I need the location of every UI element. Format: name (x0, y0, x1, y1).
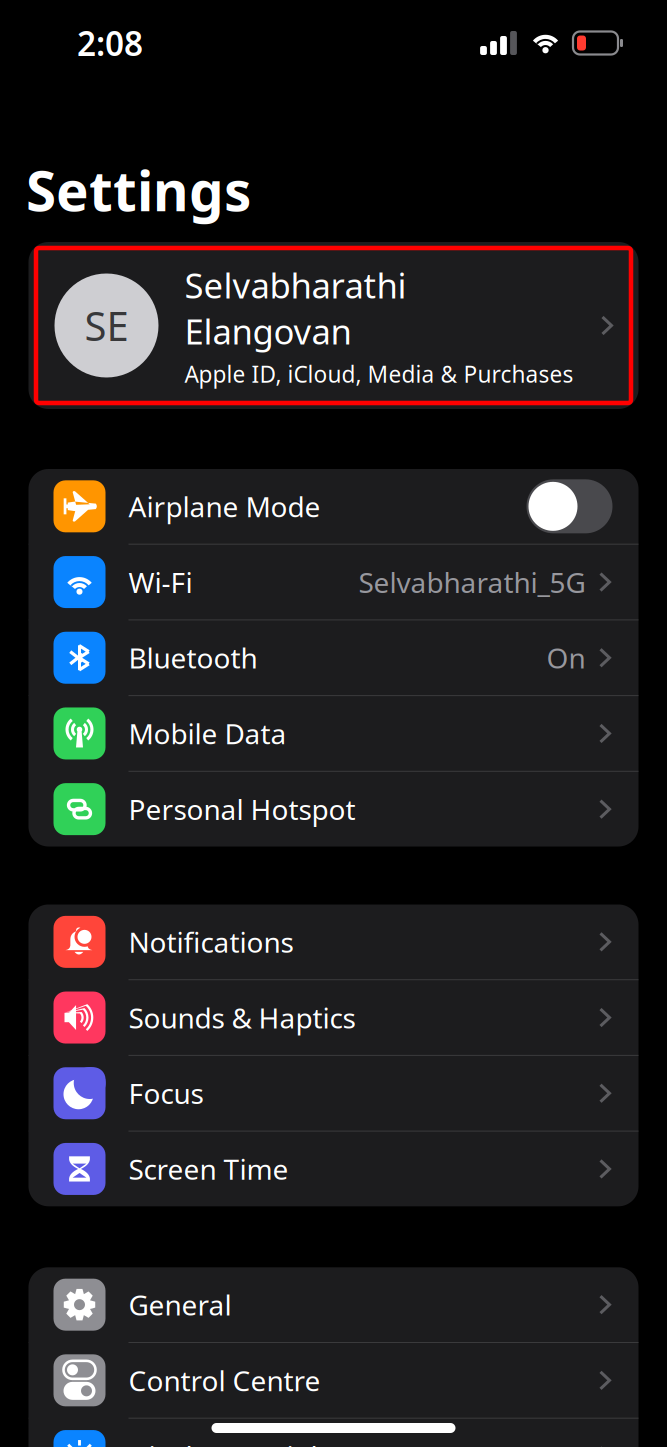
staticText: Notifications (128, 923, 293, 960)
button[interactable]: Display & Brightness (28, 1419, 638, 1447)
staticText: Mobile Data (128, 715, 286, 752)
staticText: Selvabharathi (184, 262, 406, 308)
staticText: Focus (128, 1075, 203, 1112)
button[interactable]: Personal Hotspot (28, 772, 638, 846)
staticText: Personal Hotspot (128, 791, 355, 828)
button[interactable]: Focus (28, 1056, 638, 1131)
button[interactable]: Sounds & Haptics (28, 980, 638, 1055)
staticText: SE (84, 299, 128, 352)
staticText: Elangovan (184, 308, 351, 354)
button[interactable]: Airplane Mode (28, 469, 638, 544)
button[interactable]: SE (28, 242, 638, 409)
staticText: Control Centre (128, 1362, 320, 1399)
staticText: Airplane Mode (128, 488, 320, 525)
staticText: Settings (26, 154, 251, 226)
staticText: Wi-Fi (128, 563, 192, 601)
staticText: 2:08 (77, 21, 143, 65)
staticText: Sounds & Haptics (128, 999, 355, 1036)
staticText: On (546, 639, 585, 676)
staticText: Selvabharathi_5G (358, 563, 585, 601)
staticText: General (128, 1286, 231, 1323)
button[interactable]: Bluetooth (28, 620, 638, 695)
button[interactable]: Mobile Data (28, 696, 638, 771)
button[interactable]: Wi-Fi (28, 545, 638, 619)
button[interactable]: Notifications (28, 904, 638, 979)
staticText: Apple ID, iCloud, Media & Purchases (184, 359, 573, 389)
staticText: Display & Brightness (128, 1437, 396, 1447)
staticText: Bluetooth (128, 639, 257, 676)
button[interactable]: General (28, 1267, 638, 1342)
button[interactable]: Screen Time (28, 1132, 638, 1206)
button[interactable]: Control Centre (28, 1343, 638, 1418)
staticText: Screen Time (128, 1150, 288, 1188)
